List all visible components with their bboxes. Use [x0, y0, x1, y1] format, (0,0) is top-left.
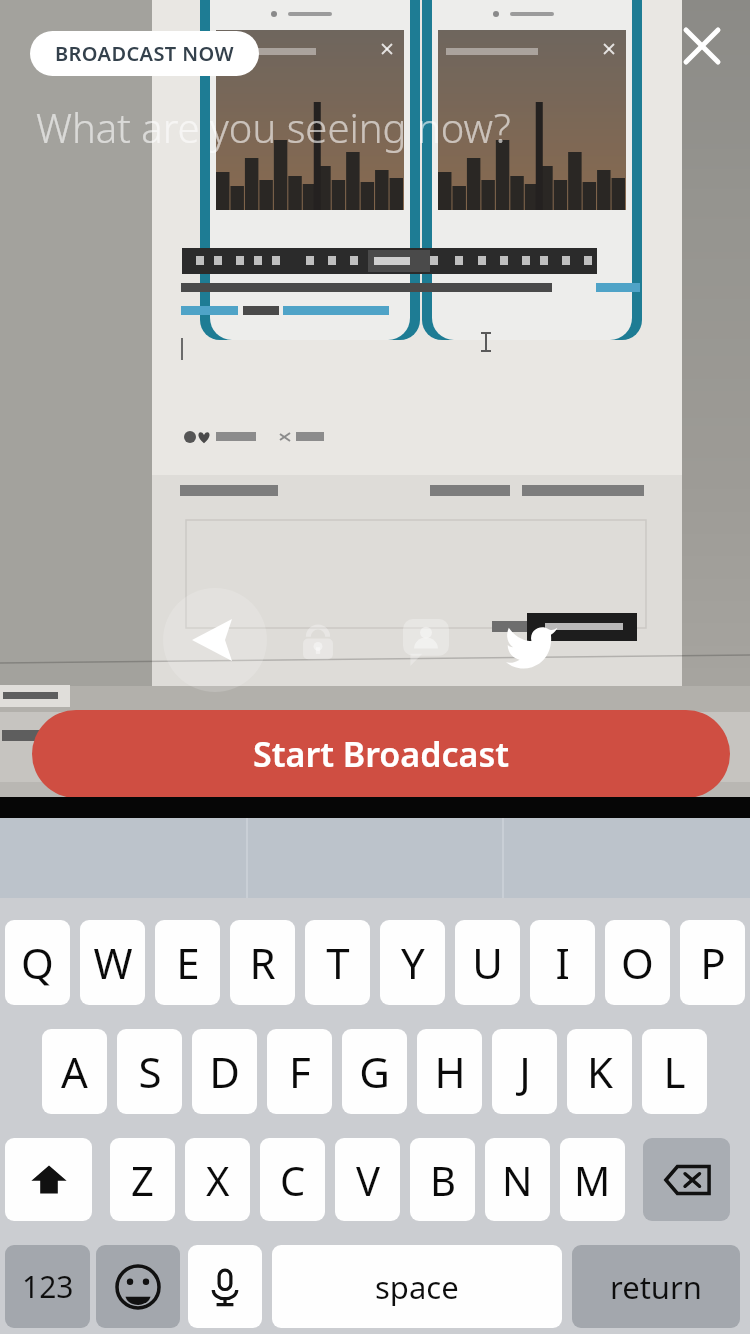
button[interactable]: A: [42, 1029, 107, 1114]
button[interactable]: Backspace: [643, 1138, 730, 1221]
staticText: S: [138, 1043, 162, 1100]
staticText: Y: [401, 934, 425, 991]
button[interactable]: Private broadcast: [288, 612, 348, 672]
button[interactable]: W: [80, 920, 145, 1005]
staticText: Z: [131, 1153, 154, 1207]
button[interactable]: Close: [666, 10, 738, 82]
staticText: D: [209, 1043, 240, 1100]
button[interactable]: L: [642, 1029, 707, 1114]
button[interactable]: 123: [5, 1245, 90, 1328]
staticText: I: [555, 934, 570, 991]
button[interactable]: C: [260, 1138, 325, 1221]
button[interactable]: K: [567, 1029, 632, 1114]
button[interactable]: Shift: [5, 1138, 92, 1221]
button[interactable]: Chat: [396, 612, 456, 672]
staticText: 123: [22, 1266, 74, 1307]
button[interactable]: R: [230, 920, 295, 1005]
button[interactable]: Y: [380, 920, 445, 1005]
button[interactable]: E: [155, 920, 220, 1005]
staticText: C: [280, 1153, 306, 1207]
button[interactable]: Q: [5, 920, 70, 1005]
button[interactable]: J: [492, 1029, 557, 1114]
staticText: O: [621, 934, 654, 991]
button[interactable]: U: [455, 920, 520, 1005]
staticText: BROADCAST NOW: [55, 40, 234, 67]
staticText: L: [663, 1043, 686, 1100]
staticText: K: [587, 1043, 613, 1100]
button[interactable]: M: [560, 1138, 625, 1221]
staticText: J: [519, 1043, 531, 1100]
button[interactable]: T: [305, 920, 370, 1005]
staticText: F: [289, 1043, 311, 1100]
button[interactable]: G: [342, 1029, 407, 1114]
button[interactable]: Location: [163, 588, 267, 692]
button[interactable]: O: [605, 920, 670, 1005]
staticText: X: [206, 1153, 230, 1207]
button[interactable]: Z: [110, 1138, 175, 1221]
staticText: space: [375, 1266, 459, 1308]
staticText: B: [430, 1153, 456, 1207]
staticText: U: [472, 934, 503, 991]
staticText: R: [249, 934, 276, 991]
button[interactable]: space: [272, 1245, 562, 1328]
staticText: M: [574, 1153, 611, 1207]
button[interactable]: Emoji: [96, 1245, 180, 1328]
staticText: T: [326, 934, 350, 991]
staticText: What are you seeing now?: [36, 100, 511, 154]
button[interactable]: X: [185, 1138, 250, 1221]
button[interactable]: BROADCAST NOW: [30, 31, 259, 76]
button[interactable]: V: [335, 1138, 400, 1221]
staticText: N: [502, 1153, 533, 1207]
staticText: Q: [21, 934, 54, 991]
staticText: Start Broadcast: [253, 731, 509, 777]
staticText: W: [93, 934, 133, 991]
button[interactable]: Share on Twitter: [500, 612, 564, 676]
button[interactable]: Dictation: [188, 1245, 262, 1328]
button[interactable]: S: [117, 1029, 182, 1114]
button[interactable]: Start Broadcast: [32, 710, 730, 798]
staticText: E: [176, 934, 200, 991]
staticText: P: [700, 934, 726, 991]
staticText: G: [359, 1043, 390, 1100]
button[interactable]: P: [680, 920, 745, 1005]
staticText: return: [610, 1266, 702, 1308]
button[interactable]: D: [192, 1029, 257, 1114]
staticText: V: [356, 1153, 380, 1207]
button[interactable]: B: [410, 1138, 475, 1221]
button[interactable]: return: [572, 1245, 740, 1328]
staticText: A: [61, 1043, 88, 1100]
button[interactable]: H: [417, 1029, 482, 1114]
button[interactable]: F: [267, 1029, 332, 1114]
button[interactable]: I: [530, 920, 595, 1005]
button[interactable]: N: [485, 1138, 550, 1221]
staticText: H: [434, 1043, 466, 1100]
